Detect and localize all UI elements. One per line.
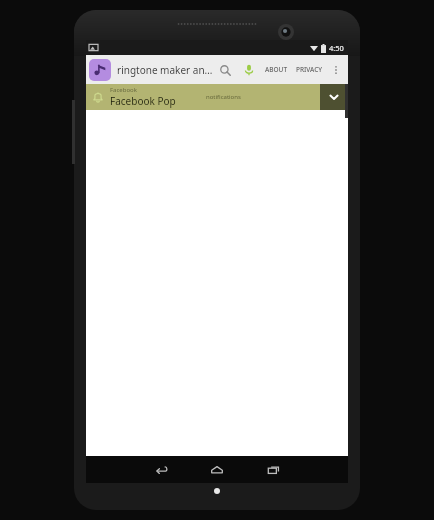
staticText: notifications (206, 93, 241, 101)
button[interactable]: ABOUT (265, 65, 288, 74)
button[interactable]: Voice search (237, 58, 261, 82)
button[interactable]: PRIVACY (296, 65, 323, 74)
button[interactable]: Back (133, 456, 189, 483)
button[interactable]: More options (327, 61, 345, 79)
staticText: Facebook Pop (110, 94, 176, 108)
button[interactable]: Recent apps (245, 456, 301, 483)
staticText: ringtone maker and mp… (117, 63, 213, 77)
button[interactable]: App icon (89, 59, 111, 81)
staticText: 4:50 (329, 43, 344, 53)
button[interactable]: ringtone maker and mp… (117, 63, 213, 77)
button[interactable]: Facebook (86, 84, 348, 110)
button[interactable]: Search (213, 58, 237, 82)
button[interactable]: Expand (320, 84, 348, 110)
staticText: ABOUT (265, 65, 288, 74)
staticText: Facebook (110, 86, 137, 94)
staticText: PRIVACY (296, 65, 323, 74)
button[interactable]: Home (189, 456, 245, 483)
